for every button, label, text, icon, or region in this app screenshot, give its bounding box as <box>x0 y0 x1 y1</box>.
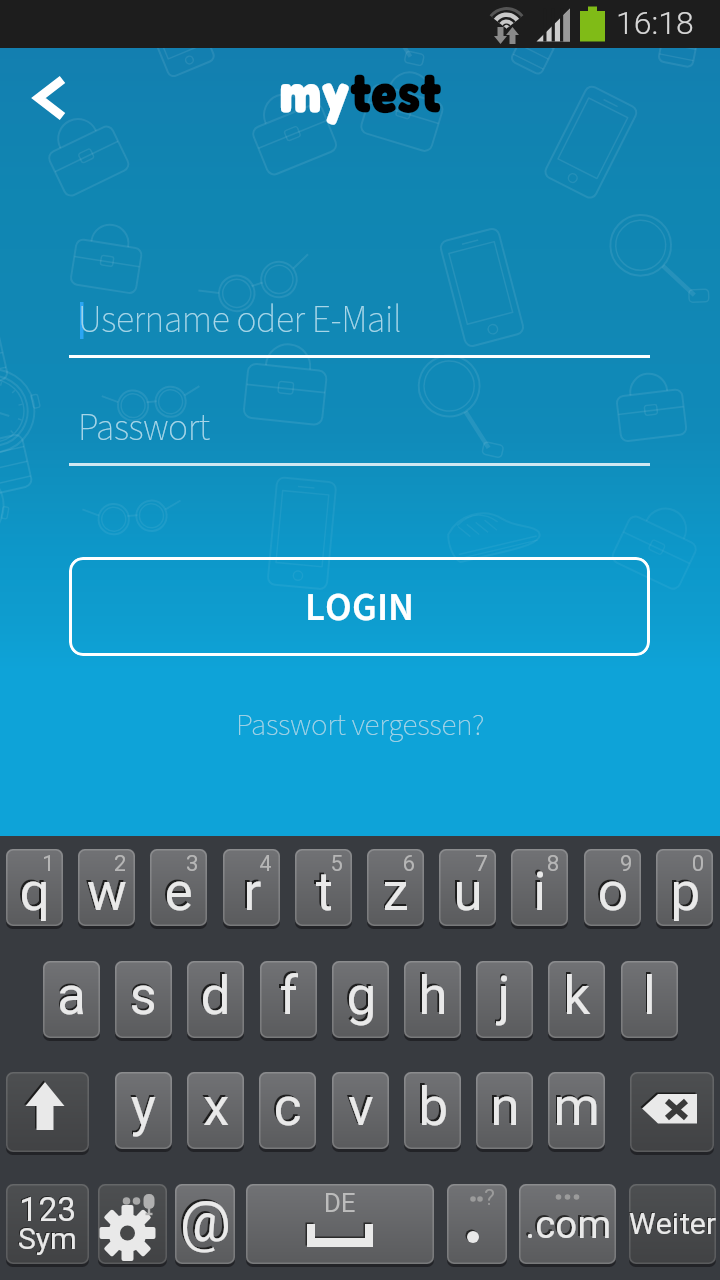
button[interactable] <box>175 1184 235 1264</box>
button[interactable] <box>621 961 678 1038</box>
button[interactable] <box>187 961 244 1038</box>
button[interactable] <box>78 849 135 926</box>
button[interactable]: Delete <box>630 1072 714 1152</box>
button[interactable] <box>223 849 280 926</box>
button[interactable] <box>332 961 389 1038</box>
button[interactable] <box>260 961 317 1038</box>
button[interactable] <box>115 1072 172 1149</box>
button[interactable] <box>404 1072 461 1149</box>
button[interactable] <box>476 961 533 1038</box>
button[interactable] <box>548 1072 605 1149</box>
staticText: Passwort <box>78 402 210 455</box>
button[interactable] <box>367 849 424 926</box>
button[interactable] <box>259 1072 316 1149</box>
button[interactable]: Back <box>16 58 84 126</box>
button[interactable] <box>69 557 650 656</box>
other: Shift <box>6 1072 89 1152</box>
staticText: Username oder E-Mail <box>78 294 402 347</box>
other: Period <box>447 1184 507 1264</box>
button[interactable] <box>584 849 641 926</box>
button[interactable]: Period <box>447 1184 507 1264</box>
button[interactable] <box>656 849 713 926</box>
button[interactable] <box>404 961 461 1038</box>
other: Settings <box>98 1184 167 1264</box>
button[interactable] <box>150 849 207 926</box>
other: Space <box>246 1184 434 1264</box>
staticText: Passwort vergessen? <box>236 703 485 747</box>
button[interactable]: Passwort vergessen? <box>0 697 720 757</box>
button[interactable]: Shift <box>6 1072 89 1152</box>
button[interactable] <box>476 1072 533 1149</box>
button[interactable]: Symbols <box>6 1184 89 1264</box>
button[interactable] <box>439 849 496 926</box>
button[interactable] <box>187 1072 244 1149</box>
button[interactable] <box>43 961 100 1038</box>
button[interactable]: Space <box>246 1184 434 1264</box>
button[interactable] <box>548 961 605 1038</box>
button[interactable] <box>629 1184 716 1264</box>
button[interactable] <box>115 961 172 1038</box>
button[interactable] <box>6 849 63 926</box>
other: Symbols <box>6 1184 89 1264</box>
button[interactable] <box>295 849 352 926</box>
button[interactable]: Settings <box>98 1184 167 1264</box>
button[interactable] <box>0 48 720 138</box>
button[interactable]: Passwort <box>69 396 650 464</box>
button[interactable] <box>519 1184 616 1264</box>
other: Delete <box>630 1072 714 1152</box>
button[interactable]: Username oder E-Mail <box>69 288 650 356</box>
button[interactable] <box>332 1072 389 1149</box>
staticText: 16:18 <box>616 4 694 42</box>
button[interactable] <box>511 849 568 926</box>
